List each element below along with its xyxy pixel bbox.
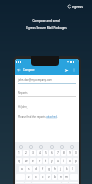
- staticText: v: [48, 175, 50, 179]
- staticText: j: [60, 167, 61, 171]
- staticText: h: [54, 167, 56, 171]
- staticText: Compose and send: [32, 19, 60, 23]
- button[interactable]: 4: [37, 150, 42, 156]
- staticText: 6: [51, 151, 53, 155]
- staticText: x: [35, 175, 37, 179]
- button[interactable]: r: [37, 158, 42, 164]
- button[interactable]: 9: [67, 150, 72, 156]
- staticText: i: [63, 159, 64, 163]
- button[interactable]: Keyboard tool: [19, 145, 23, 149]
- staticText: Reports: [18, 91, 28, 95]
- button[interactable]: b: [52, 174, 57, 180]
- staticText: Please find the reports attached.: [18, 115, 58, 119]
- button[interactable]: v: [46, 174, 51, 180]
- staticText: b: [54, 175, 56, 179]
- staticText: Egress Secure Mail Packages: [26, 26, 67, 30]
- staticText: y: [51, 159, 53, 163]
- staticText: 9: [69, 151, 71, 155]
- button[interactable]: 2: [23, 150, 29, 156]
- staticText: 8: [63, 151, 65, 155]
- staticText: q: [18, 159, 20, 163]
- button[interactable]: o: [67, 158, 72, 164]
- staticText: u: [57, 159, 59, 163]
- button[interactable]: 1: [16, 150, 22, 156]
- button[interactable]: 0: [73, 150, 78, 156]
- button[interactable]: y: [49, 158, 54, 164]
- staticText: 1: [18, 151, 20, 155]
- staticText: Hi John,: [18, 105, 28, 109]
- button[interactable]: 3: [30, 150, 36, 156]
- button[interactable]: 5: [43, 150, 48, 156]
- button[interactable]: Egress logo: [68, 4, 83, 9]
- button[interactable]: a: [19, 166, 25, 172]
- staticText: 2: [25, 151, 27, 155]
- staticText: f: [42, 167, 44, 171]
- button[interactable]: Keyboard tool: [60, 145, 64, 149]
- button[interactable]: x: [33, 174, 39, 180]
- staticText: e: [32, 159, 34, 163]
- button[interactable]: p: [73, 158, 78, 164]
- button[interactable]: 8: [61, 150, 66, 156]
- staticText: 5: [45, 151, 47, 155]
- button[interactable]: z: [26, 174, 32, 180]
- button[interactable]: g: [46, 166, 51, 172]
- button[interactable]: n: [58, 174, 63, 180]
- button[interactable]: d: [33, 166, 39, 172]
- staticText: l: [72, 167, 73, 171]
- button[interactable]: 7: [55, 150, 60, 156]
- staticText: p: [75, 159, 77, 163]
- staticText: c: [42, 175, 44, 179]
- staticText: w: [25, 159, 28, 163]
- staticText: a: [21, 167, 23, 171]
- button[interactable]: c: [40, 174, 45, 180]
- staticText: 4: [39, 151, 41, 155]
- button[interactable]: More options: [72, 68, 76, 72]
- button[interactable]: l: [70, 166, 75, 172]
- button[interactable]: i: [61, 158, 66, 164]
- staticText: r: [39, 159, 41, 163]
- staticText: z: [28, 175, 30, 179]
- staticText: 3: [32, 151, 34, 155]
- staticText: m: [65, 175, 68, 179]
- button[interactable]: Keyboard tool: [50, 145, 54, 149]
- button[interactable]: w: [23, 158, 29, 164]
- button[interactable]: u: [55, 158, 60, 164]
- staticText: t: [45, 159, 47, 163]
- button[interactable]: 6: [49, 150, 54, 156]
- button[interactable]: j: [58, 166, 63, 172]
- button[interactable]: e: [30, 158, 36, 164]
- button[interactable]: t: [43, 158, 48, 164]
- button[interactable]: Keyboard tool: [70, 145, 74, 149]
- button[interactable]: Keyboard tool: [29, 145, 33, 149]
- staticText: egress: [72, 4, 83, 9]
- button[interactable]: Keyboard tool: [39, 145, 43, 149]
- staticText: o: [69, 159, 71, 163]
- staticText: d: [35, 167, 37, 171]
- staticText: Compose: [23, 68, 35, 72]
- button[interactable]: h: [52, 166, 57, 172]
- staticText: g: [48, 167, 50, 171]
- staticText: john.doe@mycompany.com: [18, 78, 52, 82]
- staticText: k: [66, 167, 68, 171]
- button[interactable]: Back: [17, 68, 21, 72]
- staticText: 0: [75, 151, 77, 155]
- staticText: n: [60, 175, 62, 179]
- button[interactable]: s: [26, 166, 32, 172]
- button[interactable]: f: [40, 166, 45, 172]
- button[interactable]: k: [64, 166, 69, 172]
- button[interactable]: Send: [64, 68, 69, 73]
- button[interactable]: q: [16, 158, 22, 164]
- staticText: s: [28, 167, 30, 171]
- button[interactable]: m: [64, 174, 69, 180]
- staticText: 7: [57, 151, 59, 155]
